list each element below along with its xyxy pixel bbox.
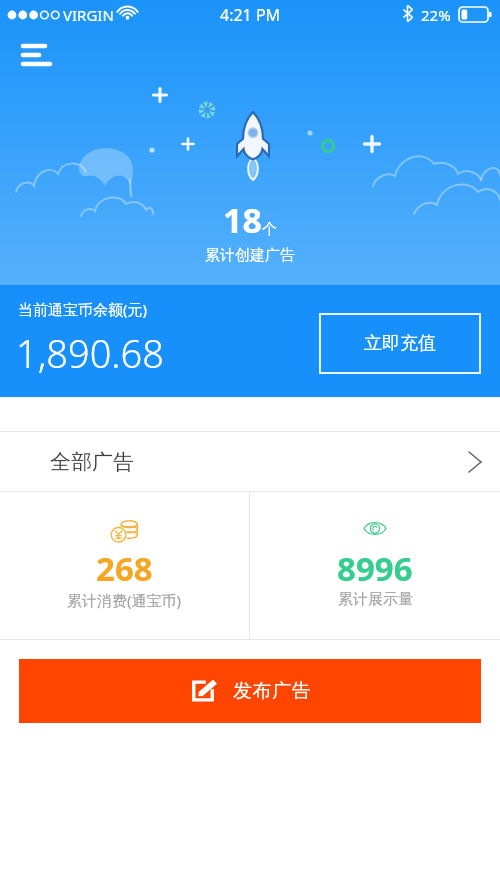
- staticText: 22%: [421, 5, 451, 25]
- staticText: 个: [262, 220, 277, 239]
- staticText: VIRGIN: [63, 5, 114, 25]
- staticText: 立即充值: [364, 332, 436, 355]
- staticText: 4:21 PM: [220, 4, 281, 26]
- button[interactable]: 立即充值: [320, 314, 480, 373]
- staticText: 累计展示量: [338, 590, 413, 609]
- button[interactable]: 8996: [250, 491, 500, 640]
- button[interactable]: 268: [0, 491, 249, 640]
- button[interactable]: 全部广告: [0, 432, 500, 491]
- staticText: 1,890.68: [16, 327, 165, 379]
- staticText: 8996: [337, 546, 413, 591]
- staticText: 累计消费(通宝币): [67, 590, 182, 610]
- staticText: 累计创建广告: [205, 246, 295, 265]
- staticText: 发布广告: [233, 679, 312, 703]
- button[interactable]: Menu: [13, 36, 59, 76]
- staticText: 18: [223, 197, 262, 243]
- staticText: 全部广告: [50, 449, 134, 475]
- staticText: 当前通宝币余额(元): [18, 299, 148, 319]
- staticText: 268: [96, 546, 153, 591]
- button[interactable]: 发布广告: [19, 659, 481, 723]
